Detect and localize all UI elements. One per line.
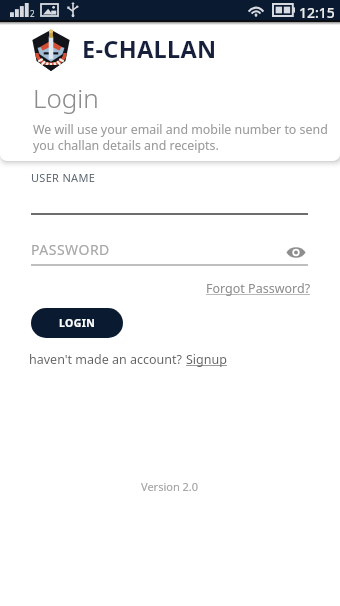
staticText: Login	[33, 80, 99, 115]
staticText: Version 2.0	[141, 479, 199, 494]
staticText: haven't made an account?	[29, 351, 186, 368]
staticText: 2	[30, 8, 35, 19]
button[interactable]: Show password	[284, 237, 308, 261]
staticText: 12:15	[299, 3, 335, 22]
button[interactable]: Forgot Password?	[206, 280, 311, 297]
button[interactable]: PASSWORD	[31, 240, 284, 259]
staticText: We will use your email and mobile number…	[33, 121, 328, 154]
staticText: LOGIN	[59, 316, 96, 330]
button[interactable]: Signup	[186, 351, 227, 368]
button[interactable]: LOGIN	[31, 308, 123, 338]
staticText: USER NAME	[31, 170, 96, 185]
staticText: E-CHALLAN	[82, 33, 217, 65]
button[interactable]: USER NAME	[31, 170, 308, 215]
